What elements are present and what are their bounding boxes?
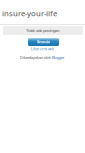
- button[interactable]: Beranda: [28, 38, 59, 46]
- staticText: Diberdayakan oleh: [20, 55, 52, 60]
- staticText: Lihat versi web: [31, 47, 54, 51]
- staticText: Tidak ada postingan.: [26, 28, 60, 33]
- button[interactable]: Lihat versi web: [31, 47, 54, 51]
- staticText: Blogger: [52, 55, 65, 60]
- button[interactable]: Blogger: [52, 55, 65, 60]
- staticText: insure-your-life: [2, 8, 57, 18]
- staticText: Beranda: [37, 40, 50, 44]
